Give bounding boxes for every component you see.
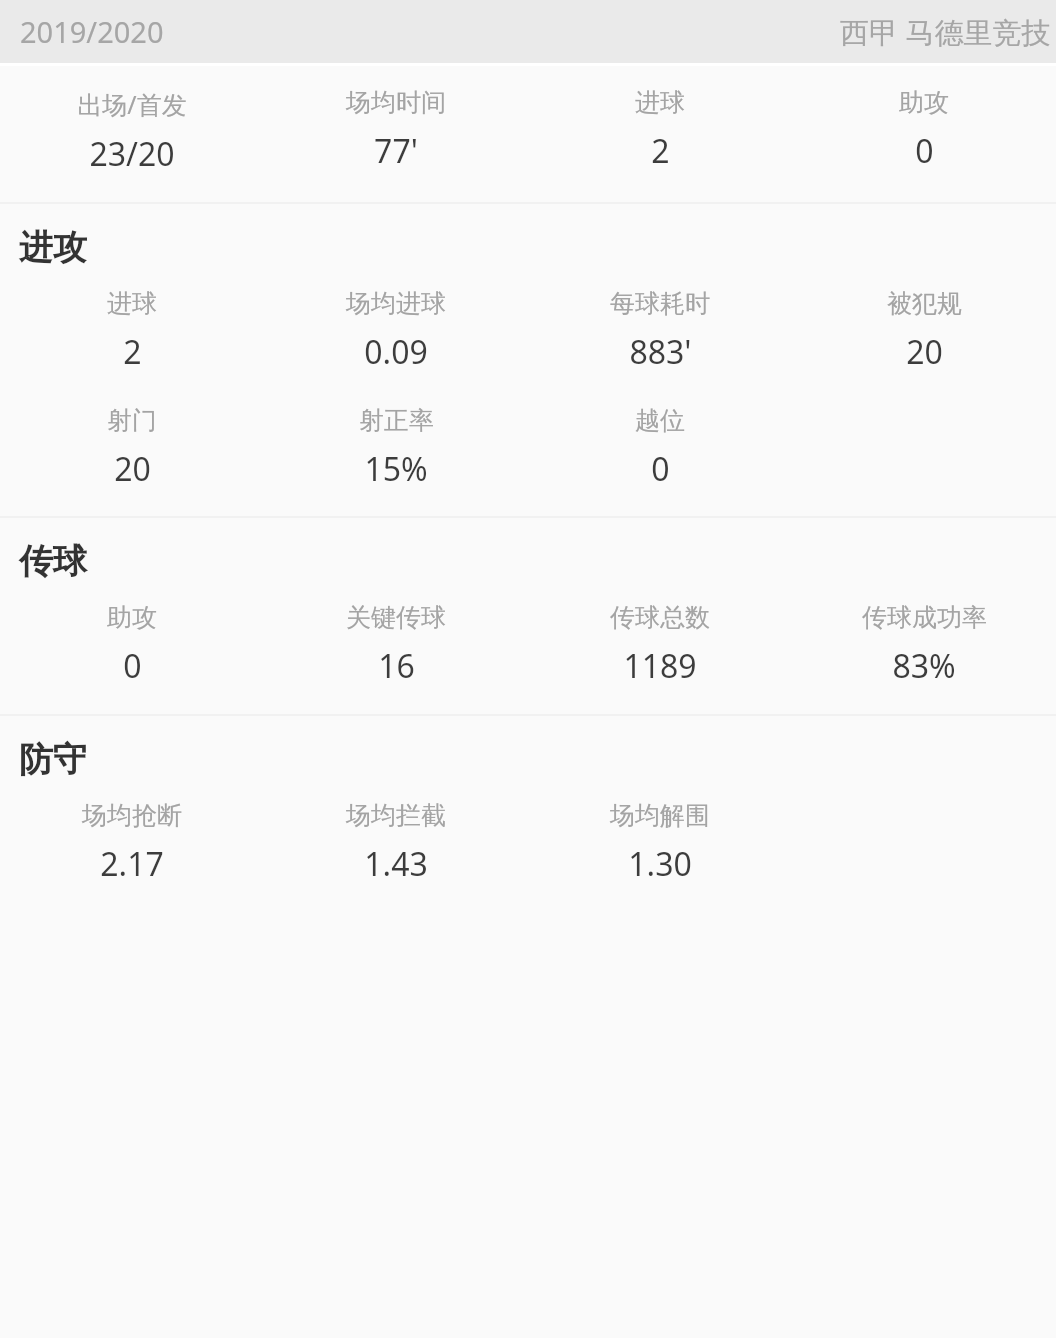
staticText: 1189 xyxy=(623,644,697,688)
staticText: 2 xyxy=(651,129,670,173)
staticText: 0.09 xyxy=(364,330,428,374)
staticText: 场均进球 xyxy=(346,288,446,319)
button[interactable]: 助攻 xyxy=(0,602,264,688)
button[interactable]: 射门 xyxy=(0,405,264,491)
staticText: 15% xyxy=(364,447,428,491)
staticText: 0 xyxy=(915,129,934,173)
button[interactable]: 场均拦截 xyxy=(264,800,528,886)
staticText: 关键传球 xyxy=(346,602,446,633)
button[interactable]: 每球耗时 xyxy=(528,288,792,374)
staticText: 场均拦截 xyxy=(346,800,446,831)
staticText: 场均解围 xyxy=(610,800,710,831)
staticText: 进球 xyxy=(635,87,685,118)
staticText: 出场/首发 xyxy=(77,87,187,121)
staticText: 1.30 xyxy=(628,842,692,886)
button[interactable]: 传球成功率 xyxy=(792,602,1056,688)
button[interactable]: 场均抢断 xyxy=(0,800,264,886)
staticText: 传球 xyxy=(19,540,87,583)
button[interactable]: 出场/首发 xyxy=(0,87,264,176)
button[interactable]: 2019/2020 xyxy=(0,0,1056,63)
button[interactable]: 越位 xyxy=(528,405,792,491)
staticText: 传球总数 xyxy=(610,602,710,633)
staticText: 2 xyxy=(123,330,142,374)
staticText: 助攻 xyxy=(899,87,949,118)
button[interactable]: 传球总数 xyxy=(528,602,792,688)
staticText: 20 xyxy=(114,447,151,491)
staticText: 0 xyxy=(651,447,670,491)
staticText: 23/20 xyxy=(89,132,175,176)
staticText: 西甲 马德里竞技 xyxy=(840,12,1051,52)
staticText: 射正率 xyxy=(359,405,434,436)
staticText: 883' xyxy=(629,330,692,374)
button[interactable]: 关键传球 xyxy=(264,602,528,688)
staticText: 场均时间 xyxy=(346,87,446,118)
button[interactable]: 助攻 xyxy=(792,87,1056,173)
staticText: 1.43 xyxy=(364,842,428,886)
button[interactable]: 场均进球 xyxy=(264,288,528,374)
staticText: 每球耗时 xyxy=(610,288,710,319)
staticText: 2019/2020 xyxy=(20,12,164,51)
staticText: 传球成功率 xyxy=(862,602,987,633)
staticText: 83% xyxy=(892,644,956,688)
staticText: 77' xyxy=(374,129,418,173)
button[interactable]: 进球 xyxy=(528,87,792,173)
staticText: 射门 xyxy=(107,405,157,436)
staticText: 防守 xyxy=(19,738,87,781)
staticText: 16 xyxy=(378,644,415,688)
staticText: 进攻 xyxy=(19,226,87,269)
button[interactable]: 射正率 xyxy=(264,405,528,491)
staticText: 被犯规 xyxy=(887,288,962,319)
staticText: 2.17 xyxy=(100,842,164,886)
button[interactable]: 场均解围 xyxy=(528,800,792,886)
staticText: 进球 xyxy=(107,288,157,319)
staticText: 0 xyxy=(123,644,142,688)
button[interactable]: 场均时间 xyxy=(264,87,528,173)
button[interactable]: 被犯规 xyxy=(792,288,1056,374)
button[interactable]: 进球 xyxy=(0,288,264,374)
staticText: 20 xyxy=(906,330,943,374)
staticText: 场均抢断 xyxy=(82,800,182,831)
staticText: 越位 xyxy=(635,405,685,436)
staticText: 助攻 xyxy=(107,602,157,633)
